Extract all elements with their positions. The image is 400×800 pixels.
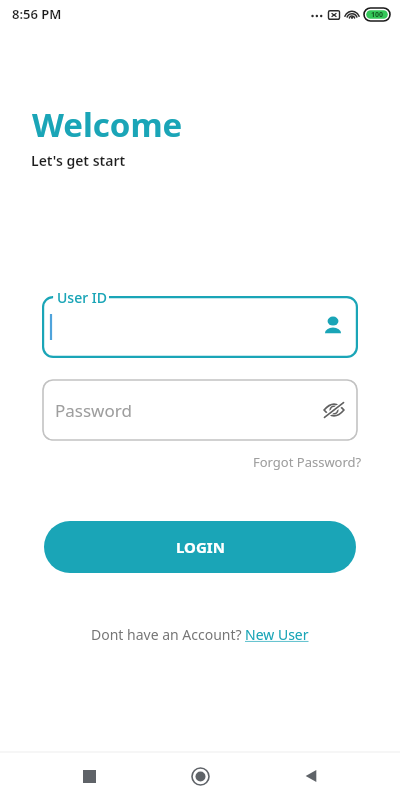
staticText: Welcome: [32, 102, 183, 147]
button[interactable]: Forgot Password?: [253, 449, 400, 475]
staticText: Let's get start: [31, 151, 126, 170]
button[interactable]: User ID: [42, 296, 358, 358]
staticText: LOGIN: [176, 537, 225, 557]
button[interactable]: Home: [178, 754, 222, 798]
staticText: 8:56 PM: [12, 5, 62, 23]
staticText: Password: [55, 399, 132, 422]
staticText: User ID: [57, 288, 107, 307]
button[interactable]: Password: [42, 379, 358, 441]
staticText: Dont have an Account?: [91, 625, 242, 644]
button[interactable]: New User: [242, 625, 309, 644]
staticText: Forgot Password?: [253, 453, 362, 471]
staticText: 100: [371, 10, 384, 20]
button[interactable]: LOGIN: [44, 521, 356, 573]
button[interactable]: Recents: [67, 754, 111, 798]
staticText: New User: [245, 625, 309, 644]
button[interactable]: Back: [289, 754, 333, 798]
button[interactable]: Show password: [319, 395, 349, 425]
